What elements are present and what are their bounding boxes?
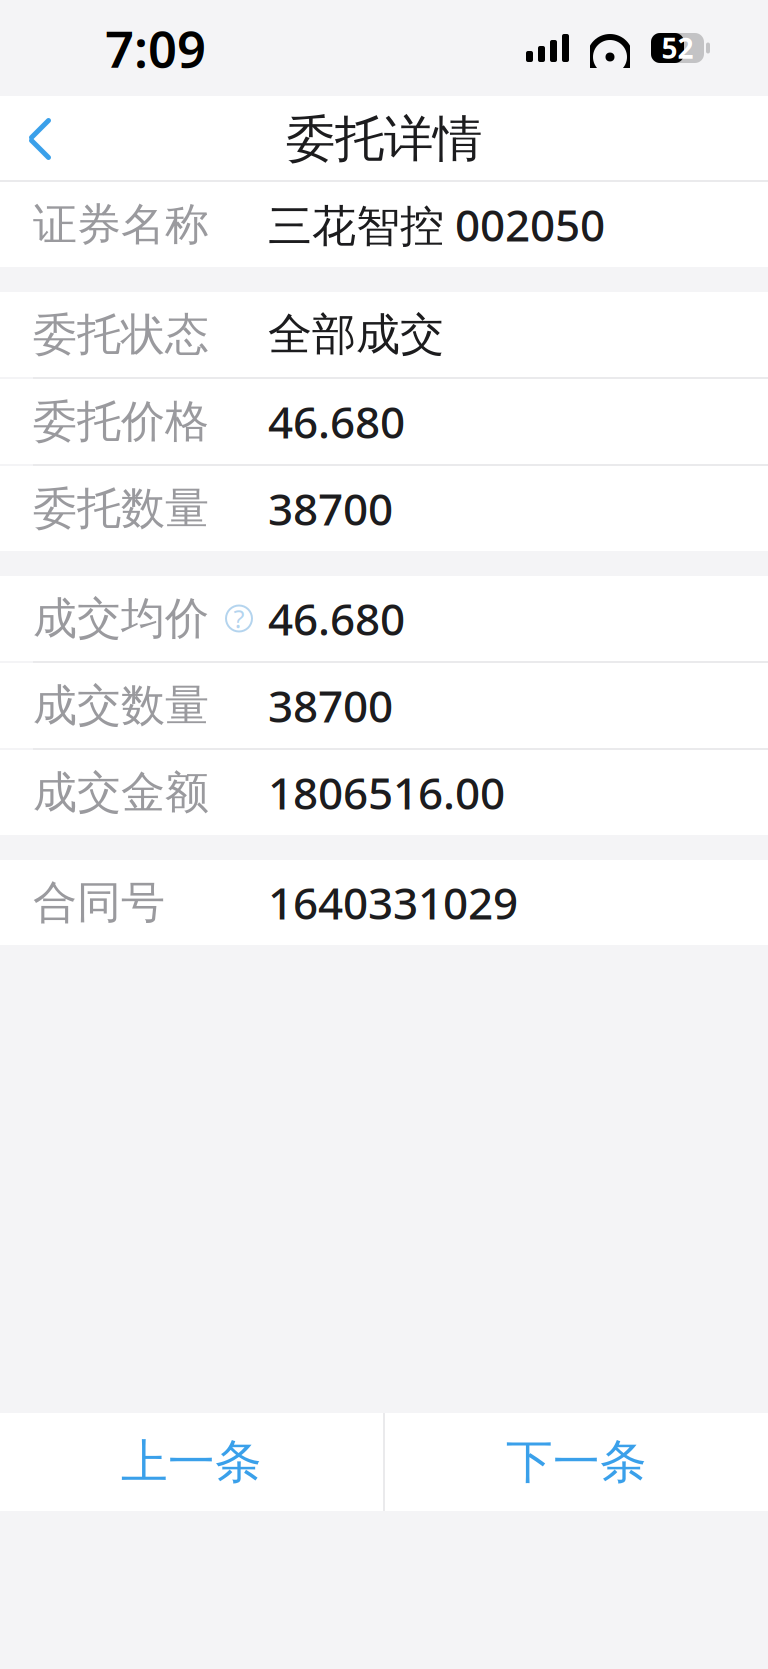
- staticText: ?: [233, 602, 244, 635]
- staticText: 52: [661, 29, 693, 67]
- staticText: 委托详情: [286, 109, 482, 169]
- staticText: 三花智控 002050: [268, 195, 605, 254]
- staticText: 1640331029: [268, 873, 518, 932]
- staticText: 全部成交: [268, 307, 444, 361]
- button[interactable]: 返回: [0, 96, 80, 182]
- button[interactable]: 下一条: [385, 1413, 768, 1511]
- staticText: 证券名称: [33, 197, 209, 251]
- staticText: 合同号: [33, 875, 165, 929]
- staticText: 成交数量: [33, 678, 209, 732]
- staticText: 成交均价: [33, 591, 209, 645]
- staticText: 38700: [268, 479, 393, 538]
- staticText: 7:09: [105, 14, 206, 82]
- staticText: 1806516.00: [268, 763, 505, 822]
- button[interactable]: 成交均价说明: [209, 604, 253, 632]
- staticText: 46.680: [268, 392, 405, 451]
- button[interactable]: 上一条: [0, 1413, 383, 1511]
- staticText: 委托数量: [33, 481, 209, 535]
- staticText: 38700: [268, 676, 393, 735]
- staticText: 成交金额: [33, 765, 209, 819]
- staticText: 委托价格: [33, 394, 209, 448]
- staticText: 下一条: [506, 1433, 647, 1491]
- staticText: 上一条: [121, 1433, 262, 1491]
- staticText: 委托状态: [33, 307, 209, 361]
- staticText: 46.680: [268, 589, 405, 648]
